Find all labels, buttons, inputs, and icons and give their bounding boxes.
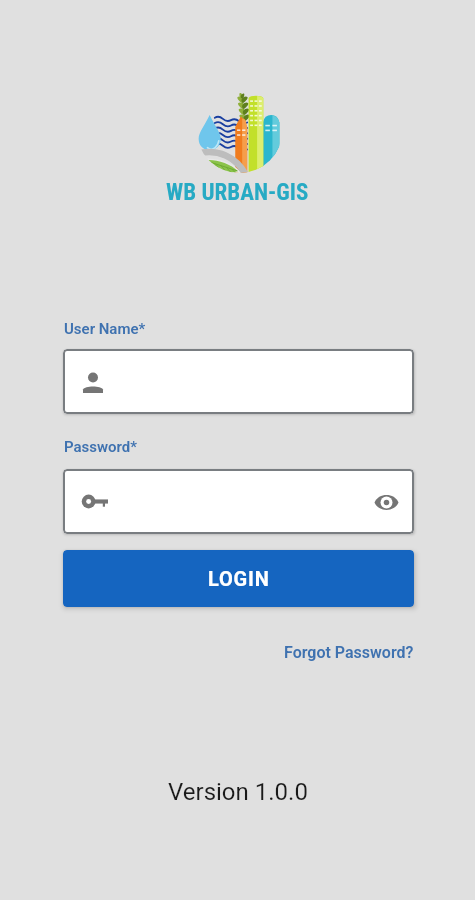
staticText: Password* bbox=[64, 438, 138, 456]
button[interactable] bbox=[63, 349, 414, 414]
button[interactable]: Forgot Password? bbox=[284, 643, 414, 662]
staticText: Version 1.0.0 bbox=[168, 778, 308, 806]
button[interactable]: Show password bbox=[371, 487, 401, 517]
staticText: WB URBAN-GIS bbox=[166, 179, 309, 206]
staticText: Forgot Password? bbox=[284, 643, 414, 662]
button[interactable]: Show password bbox=[63, 469, 414, 534]
button[interactable]: LOGIN bbox=[63, 550, 414, 607]
staticText: User Name* bbox=[64, 320, 146, 338]
staticText: LOGIN bbox=[208, 567, 270, 590]
